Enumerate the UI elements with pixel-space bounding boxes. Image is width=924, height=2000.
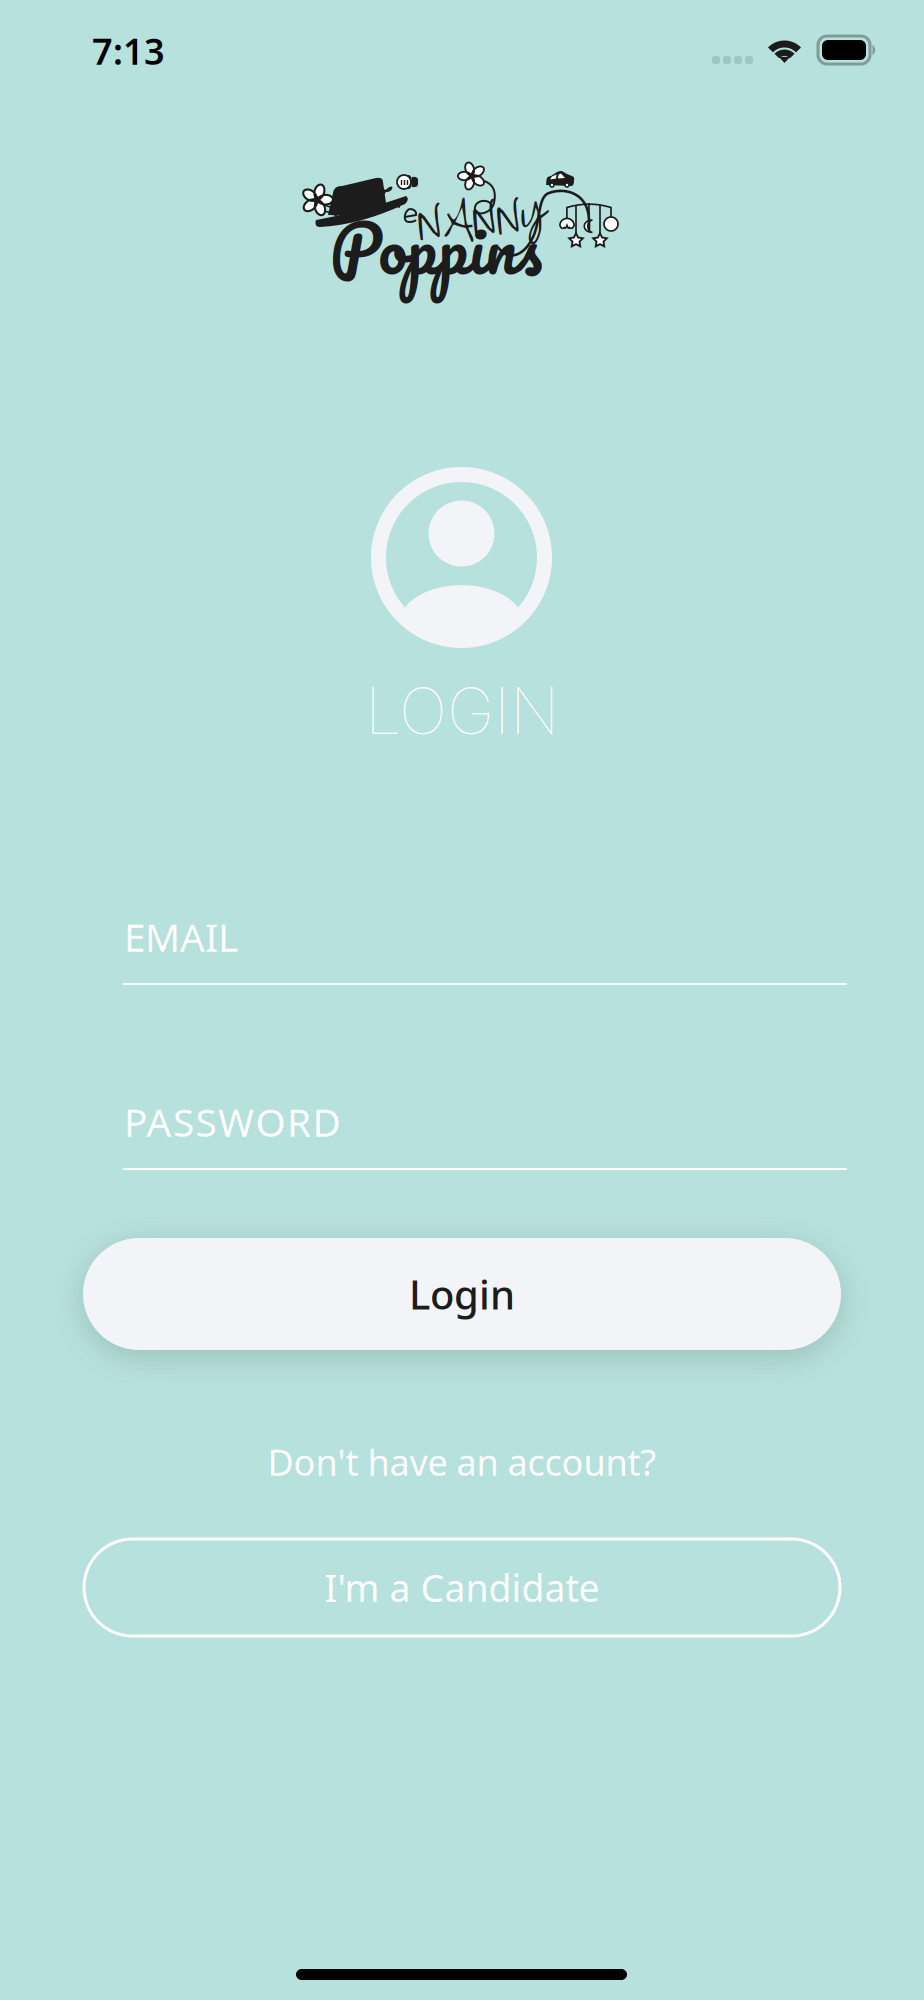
staticText: Don't have an account?	[267, 1438, 656, 1486]
staticText: I'm a Candidate	[324, 1563, 599, 1612]
staticText: Poppins	[330, 191, 542, 303]
staticText: NANNY	[418, 179, 546, 263]
staticText: 7:13	[92, 27, 165, 75]
button[interactable]: I'm a Candidate	[84, 1539, 840, 1636]
button[interactable]: Login	[83, 1238, 841, 1350]
staticText: LOGIN	[365, 672, 559, 749]
staticText: EMAIL	[124, 911, 238, 962]
staticText: PASSWORD	[124, 1096, 340, 1147]
staticText: Login	[409, 1267, 515, 1320]
